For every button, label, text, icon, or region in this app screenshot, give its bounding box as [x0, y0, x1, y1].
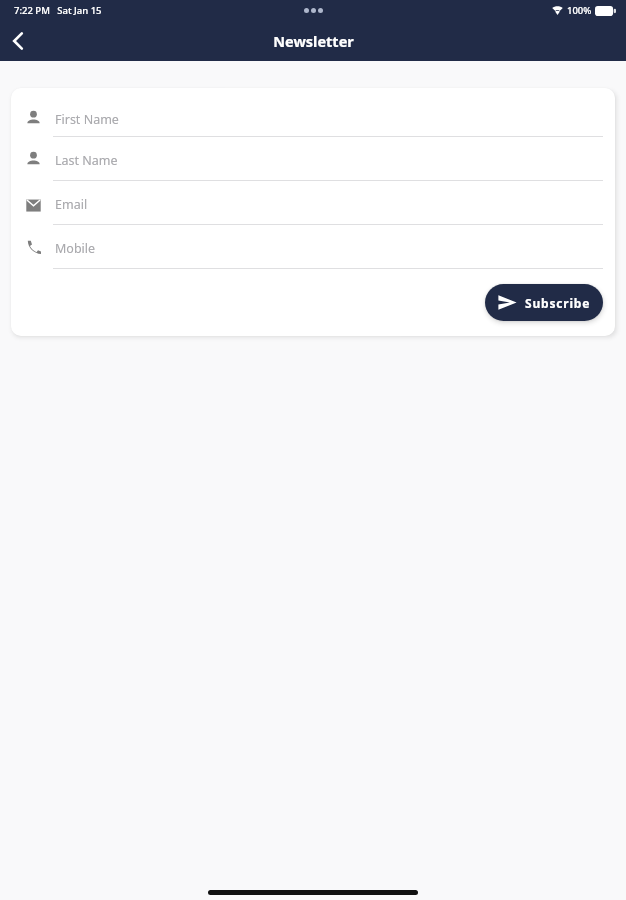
- staticText: Subscribe: [525, 295, 591, 311]
- staticText: Mobile: [55, 240, 96, 257]
- button[interactable]: Email: [11, 181, 615, 225]
- staticText: Email: [55, 196, 88, 213]
- button[interactable]: Last Name: [11, 137, 615, 181]
- staticText: Newsletter: [273, 31, 354, 51]
- staticText: 7:22 PM Sat Jan 15: [14, 4, 102, 17]
- staticText: First Name: [55, 111, 119, 128]
- button[interactable]: First Name: [11, 98, 615, 137]
- button[interactable]: Back: [1, 24, 35, 58]
- staticText: 100%: [567, 4, 592, 17]
- button[interactable]: Subscribe: [485, 284, 603, 321]
- button[interactable]: Mobile: [11, 225, 615, 269]
- staticText: Last Name: [55, 152, 118, 169]
